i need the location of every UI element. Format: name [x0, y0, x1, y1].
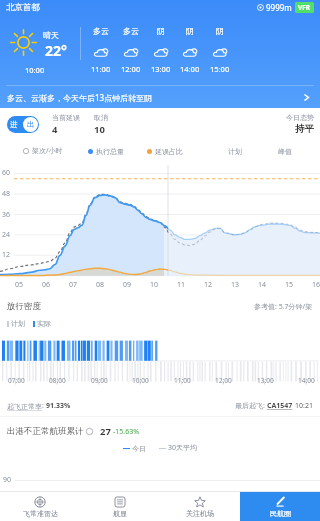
button[interactable]: 出港不正常航班累计 — [7, 423, 320, 440]
staticText: 13:00 — [257, 376, 274, 385]
staticText: 出 — [27, 120, 35, 129]
staticText: 91.33% — [46, 401, 71, 411]
staticText: 4 — [52, 123, 58, 136]
staticText: 06 — [42, 280, 51, 290]
staticText: VFR — [298, 3, 311, 12]
staticText: 执行总量 — [96, 147, 124, 156]
staticText: 延误占比 — [155, 147, 183, 156]
staticText: 关注机场 — [186, 509, 214, 518]
staticText: 起飞正常率 — [7, 402, 42, 411]
staticText: 14:00 — [298, 376, 315, 385]
staticText: 北京首都 — [6, 2, 40, 13]
staticText: 22° — [45, 41, 67, 60]
staticText: 阴 — [216, 26, 224, 36]
button[interactable]: 进 — [7, 116, 39, 133]
button[interactable]: 民航圈 — [240, 492, 320, 521]
button[interactable]: 关注机场 — [160, 492, 240, 521]
staticText: 架次/小时 — [32, 146, 63, 156]
staticText: 09:00 — [91, 376, 108, 385]
staticText: 晴天 — [43, 30, 59, 40]
staticText: 12:00 — [121, 64, 141, 74]
staticText: 多云、云渐多，今天午后13点钟后转至阴 — [7, 92, 153, 103]
staticText: 48 — [2, 189, 11, 199]
staticText: 持平 — [295, 123, 314, 135]
staticText: CA1547 — [267, 401, 293, 411]
staticText: 10 — [150, 280, 159, 290]
staticText: 今日态势 — [286, 113, 314, 122]
staticText: 12:00 — [215, 376, 232, 385]
staticText: -15.63% — [113, 427, 139, 437]
staticText: 24 — [2, 230, 11, 240]
staticText: 15:00 — [210, 64, 230, 74]
button[interactable]: 飞常准雷达 — [0, 492, 80, 521]
staticText: 08 — [96, 280, 105, 290]
staticText: 飞常准雷达 — [23, 509, 58, 518]
staticText: 08:00 — [49, 376, 66, 385]
staticText: 今日 — [132, 444, 146, 453]
staticText: 多云 — [93, 26, 109, 36]
staticText: 27 — [100, 425, 111, 438]
staticText: 12 — [204, 280, 213, 290]
staticText: 当前延误 — [52, 113, 80, 122]
staticText: 07 — [69, 280, 78, 290]
staticText: 13:00 — [151, 64, 171, 74]
staticText: 10:00 — [25, 65, 45, 75]
staticText: 航显 — [113, 509, 127, 518]
staticText: 出港不正常航班累计 — [7, 426, 84, 437]
staticText: 10 — [94, 123, 105, 136]
staticText: 12 — [2, 250, 11, 260]
staticText: 07:00 — [8, 376, 25, 385]
staticText: 参考值: 5.7分钟/架 — [254, 302, 313, 312]
staticText: 进 — [10, 120, 18, 129]
staticText: 16 — [312, 280, 320, 290]
staticText: 10:21 — [295, 401, 313, 411]
staticText: 最后起飞: — [235, 401, 265, 411]
staticText: 11 — [177, 280, 186, 290]
staticText: 36 — [2, 210, 11, 220]
staticText: 14 — [258, 280, 267, 290]
staticText: 15 — [285, 280, 294, 290]
staticText: 实际 — [37, 319, 51, 328]
staticText: 阴 — [157, 26, 165, 36]
staticText: 阴 — [186, 26, 194, 36]
staticText: 60 — [2, 168, 11, 178]
staticText: 计划 — [11, 319, 25, 328]
staticText: : — [42, 401, 44, 411]
staticText: 10:00 — [132, 376, 149, 385]
other: More weather — [301, 92, 312, 103]
staticText: 14:00 — [180, 64, 200, 74]
staticText: 峰值 — [278, 147, 292, 156]
staticText: 30天平均 — [168, 443, 198, 453]
staticText: 11:00 — [91, 64, 111, 74]
staticText: 计划 — [228, 147, 242, 156]
staticText: 取消 — [94, 113, 108, 122]
staticText: 90 — [3, 475, 12, 485]
button[interactable]: 航显 — [80, 492, 160, 521]
staticText: 多云 — [123, 26, 139, 36]
staticText: 9999m — [266, 2, 292, 13]
staticText: 11:00 — [174, 376, 191, 385]
staticText: 05 — [15, 280, 24, 290]
staticText: 09 — [123, 280, 132, 290]
staticText: 13 — [231, 280, 240, 290]
staticText: 放行密度 — [7, 301, 41, 312]
staticText: 民航圈 — [270, 509, 291, 518]
button[interactable]: 多云、云渐多，今天午后13点钟后转至阴 — [0, 86, 320, 108]
